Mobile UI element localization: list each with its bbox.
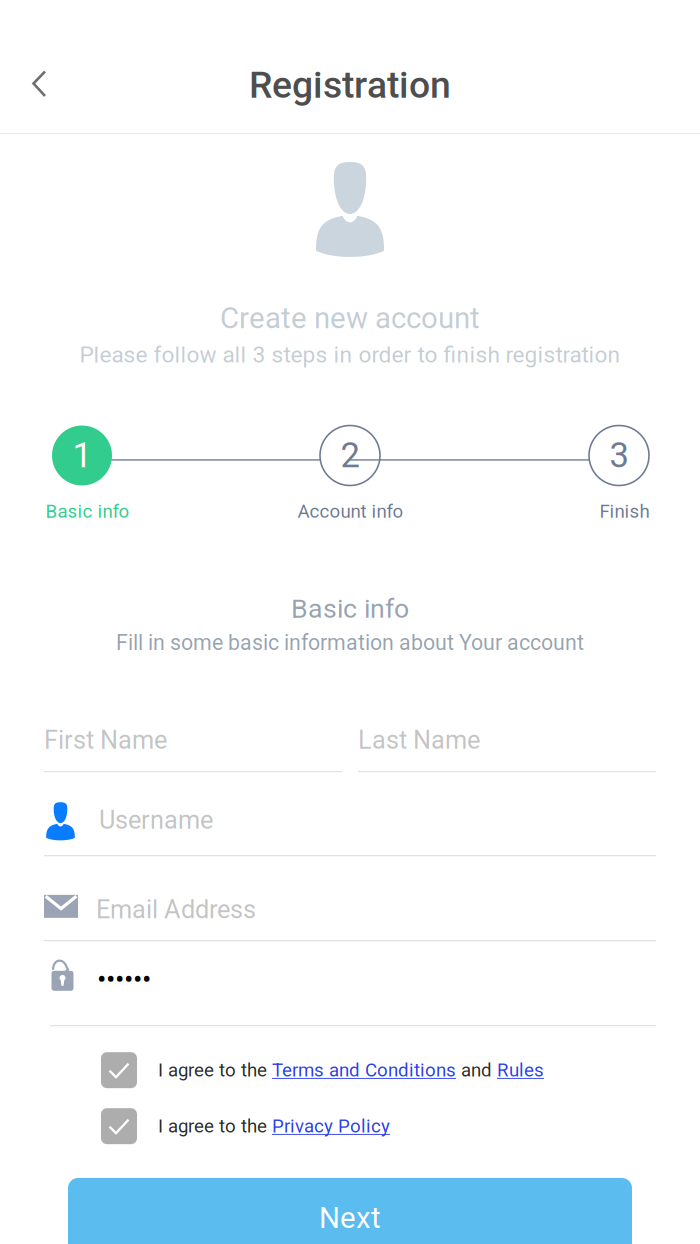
button[interactable]: I agree to the xyxy=(101,1108,660,1144)
staticText: Create new account xyxy=(220,301,480,335)
staticText: Account info xyxy=(297,500,403,522)
staticText: Terms and Conditions xyxy=(272,1059,456,1081)
staticText: Fill in some basic information about You… xyxy=(116,630,584,655)
button[interactable]: Back xyxy=(32,70,62,114)
staticText: Please follow all 3 steps in order to fi… xyxy=(79,341,620,368)
staticText: 1 xyxy=(72,435,91,476)
staticText: 3 xyxy=(609,435,628,476)
staticText: I agree to the xyxy=(158,1059,272,1081)
staticText: Privacy Policy xyxy=(272,1115,390,1137)
staticText: Finish xyxy=(599,500,649,522)
staticText: First Name xyxy=(44,725,167,755)
staticText: I agree to the xyxy=(158,1115,272,1137)
staticText: Username xyxy=(99,805,213,835)
staticText: Next xyxy=(319,1201,381,1235)
staticText: 2 xyxy=(340,435,359,476)
staticText: Rules xyxy=(497,1059,544,1081)
staticText: Last Name xyxy=(358,725,480,755)
button[interactable]: I agree to the xyxy=(101,1052,660,1088)
staticText: •••••• xyxy=(97,963,151,996)
staticText: and xyxy=(456,1059,497,1081)
staticText: Basic info xyxy=(291,593,409,624)
staticText: Registration xyxy=(249,63,451,107)
staticText: Email Address xyxy=(96,895,256,924)
button[interactable]: Next xyxy=(68,1178,632,1244)
staticText: Basic info xyxy=(45,500,129,522)
